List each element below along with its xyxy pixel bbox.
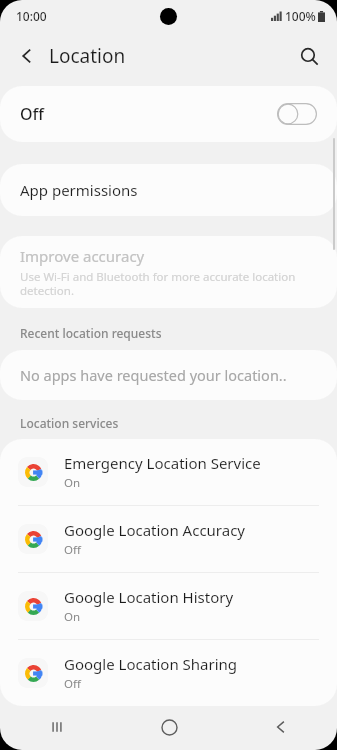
staticText: No apps have requested your location.. xyxy=(20,365,287,385)
button[interactable]: Back xyxy=(225,704,337,750)
button[interactable]: Home xyxy=(113,704,225,750)
button[interactable]: Recents xyxy=(0,704,113,750)
staticText: Use Wi-Fi and Bluetooth for more accurat… xyxy=(20,269,317,298)
staticText: Google Location History xyxy=(64,587,234,607)
staticText: Off xyxy=(64,542,81,558)
staticText: Google Location Accuracy xyxy=(64,520,246,540)
staticText: Location xyxy=(49,43,126,69)
button[interactable]: Back xyxy=(7,36,47,76)
staticText: App permissions xyxy=(20,180,138,200)
staticText: 100% xyxy=(285,8,316,24)
staticText: 10:00 xyxy=(16,8,47,24)
button[interactable]: Google Location Sharing xyxy=(0,640,337,706)
button[interactable]: Off xyxy=(0,86,337,142)
staticText: Google Location Sharing xyxy=(64,654,238,674)
staticText: On xyxy=(64,475,81,491)
staticText: On xyxy=(64,609,81,625)
button[interactable]: Google Location Accuracy xyxy=(0,506,337,572)
staticText: Recent location requests xyxy=(20,325,162,341)
staticText: Off xyxy=(20,103,44,125)
button[interactable]: Search xyxy=(289,36,329,76)
button[interactable]: Google Location History xyxy=(0,573,337,639)
button[interactable]: Location switch, off xyxy=(277,103,317,125)
staticText: Off xyxy=(64,676,81,692)
staticText: Emergency Location Service xyxy=(64,453,261,473)
staticText: Improve accuracy xyxy=(20,246,145,266)
staticText: Location services xyxy=(20,415,119,431)
button[interactable]: Emergency Location Service xyxy=(0,439,337,505)
button[interactable]: App permissions xyxy=(0,164,337,216)
